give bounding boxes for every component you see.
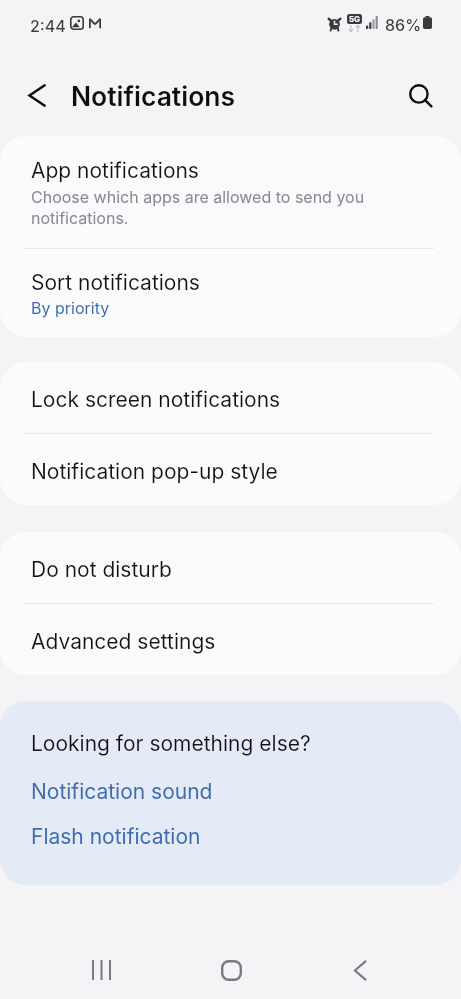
staticText: Choose which apps are allowed to send yo…	[31, 187, 365, 228]
staticText: Notification pop-up style	[31, 459, 278, 484]
staticText: Lock screen notifications	[31, 387, 281, 412]
staticText: Do not disturb	[31, 557, 172, 582]
staticText: Sort notifications	[31, 270, 200, 295]
staticText: 86%	[385, 15, 422, 34]
button[interactable]: Back	[13, 71, 61, 119]
button[interactable]: Lock screen notifications	[0, 362, 461, 433]
staticText: Advanced settings	[31, 629, 216, 654]
button[interactable]: Do not disturb	[0, 532, 461, 603]
staticText: Flash notification	[31, 824, 201, 849]
button[interactable]: Notification pop-up style	[0, 434, 461, 505]
staticText: Looking for something else?	[31, 731, 311, 756]
button[interactable]: Flash notification	[31, 824, 434, 849]
button[interactable]: Sort notifications	[0, 249, 461, 337]
staticText: Notification sound	[31, 779, 213, 804]
staticText: 5G	[349, 14, 361, 24]
button[interactable]: Back	[336, 946, 384, 994]
button[interactable]: Recent apps	[77, 946, 125, 994]
button[interactable]: App notifications	[0, 136, 461, 248]
button[interactable]: Notification sound	[31, 779, 434, 804]
staticText: 2:44	[30, 16, 66, 35]
staticText: By priority	[31, 298, 110, 317]
staticText: App notifications	[31, 158, 199, 183]
button[interactable]: Search	[396, 71, 444, 119]
button[interactable]: Advanced settings	[0, 604, 461, 675]
button[interactable]: Home	[207, 946, 255, 994]
staticText: Notifications	[71, 80, 236, 112]
